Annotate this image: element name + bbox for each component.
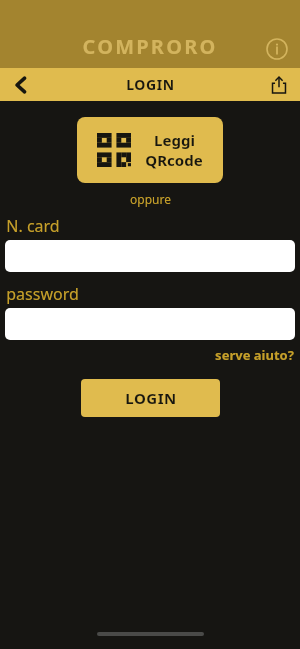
button[interactable]: Info xyxy=(262,34,292,64)
staticText: LOGIN xyxy=(126,75,175,94)
staticText: Leggi xyxy=(154,130,195,150)
button[interactable]: serve aiuto? xyxy=(215,345,300,365)
staticText: COMPRORO xyxy=(82,33,218,60)
staticText: QRcode xyxy=(145,150,203,170)
staticText: oppure xyxy=(130,191,171,207)
staticText: LOGIN xyxy=(125,388,177,408)
button[interactable]: LOGIN xyxy=(81,379,220,417)
button[interactable] xyxy=(5,240,295,272)
button[interactable]: Back xyxy=(6,70,36,100)
staticText: serve aiuto? xyxy=(215,346,294,364)
button[interactable] xyxy=(5,308,295,340)
staticText: password xyxy=(6,283,79,305)
button[interactable]: Leggi xyxy=(77,117,223,183)
staticText: N. card xyxy=(6,215,60,237)
button[interactable]: Share xyxy=(264,70,294,100)
